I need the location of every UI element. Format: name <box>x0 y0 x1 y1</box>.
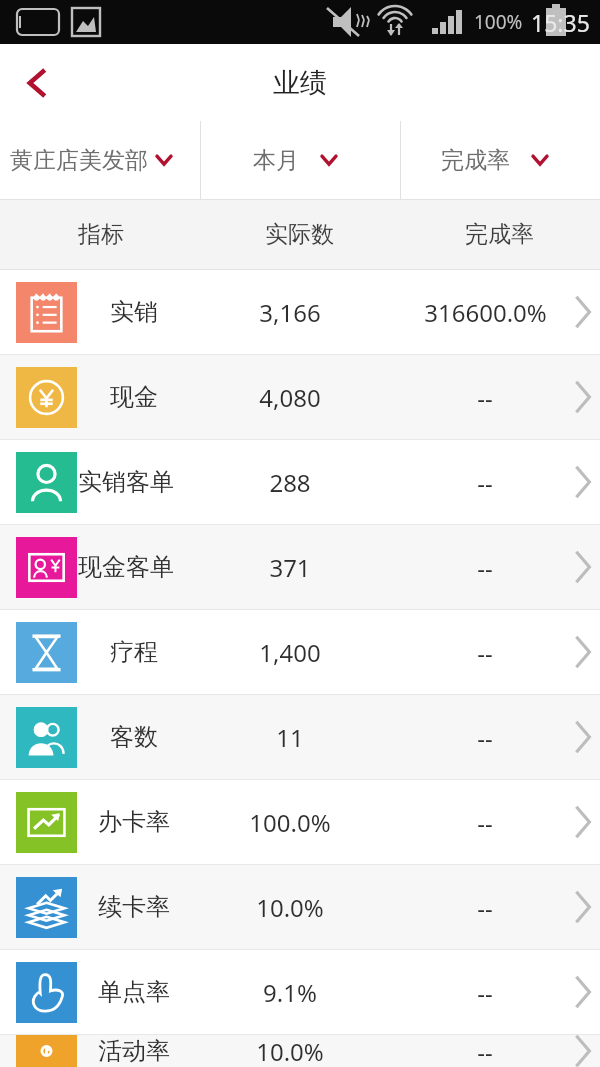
button[interactable]: 疗程 <box>0 610 600 694</box>
staticText: 实销 <box>110 297 158 327</box>
staticText: -- <box>477 381 493 414</box>
button[interactable]: 黄庄店美发部 <box>0 121 200 199</box>
staticText: 客数 <box>110 722 158 752</box>
staticText: 3,166 <box>259 296 321 329</box>
staticText: 活动率 <box>98 1036 170 1066</box>
staticText: 黄庄店美发部 <box>10 146 148 175</box>
staticText: -- <box>477 721 493 754</box>
staticText: 单点率 <box>98 977 170 1007</box>
staticText: -- <box>477 806 493 839</box>
staticText: 11 <box>276 721 304 754</box>
staticText: 100.0% <box>249 806 331 839</box>
staticText: 100% <box>474 9 523 35</box>
staticText: 15:35 <box>531 7 590 38</box>
staticText: -- <box>477 1035 493 1067</box>
staticText: -- <box>477 551 493 584</box>
staticText: 4,080 <box>259 381 321 414</box>
staticText: 本月 <box>253 146 299 175</box>
button[interactable]: Back <box>0 46 74 120</box>
staticText: 实际数 <box>265 220 334 249</box>
button[interactable]: 办卡率 <box>0 780 600 864</box>
staticText: 316600.0% <box>424 296 547 329</box>
staticText: 办卡率 <box>98 807 170 837</box>
staticText: -- <box>477 976 493 1009</box>
staticText: 续卡率 <box>98 892 170 922</box>
staticText: 371 <box>269 551 311 584</box>
staticText: 疗程 <box>110 637 158 667</box>
button[interactable]: 活动率 <box>0 1035 600 1067</box>
staticText: 实销客单价 <box>78 467 190 497</box>
staticText: -- <box>477 636 493 669</box>
button[interactable]: 现金 <box>0 355 600 439</box>
button[interactable]: 客数 <box>0 695 600 779</box>
button[interactable]: 单点率 <box>0 950 600 1034</box>
staticText: -- <box>477 891 493 924</box>
button[interactable]: 完成率 <box>401 121 600 199</box>
staticText: 业绩 <box>273 66 327 100</box>
staticText: 288 <box>269 466 311 499</box>
staticText: 现金 <box>110 382 158 412</box>
staticText: 完成率 <box>465 220 534 249</box>
staticText: 现金客单价 <box>78 552 190 582</box>
staticText: 10.0% <box>256 891 324 924</box>
staticText: -- <box>477 466 493 499</box>
staticText: 10.0% <box>256 1035 324 1067</box>
staticText: 完成率 <box>441 146 510 175</box>
button[interactable]: 续卡率 <box>0 865 600 949</box>
staticText: 指标 <box>78 220 124 249</box>
button[interactable]: 现金客单价 <box>0 525 600 609</box>
staticText: 9.1% <box>263 976 317 1009</box>
button[interactable]: 实销客单价 <box>0 440 600 524</box>
button[interactable]: 实销 <box>0 270 600 354</box>
button[interactable]: 本月 <box>201 121 400 199</box>
staticText: 1,400 <box>259 636 321 669</box>
